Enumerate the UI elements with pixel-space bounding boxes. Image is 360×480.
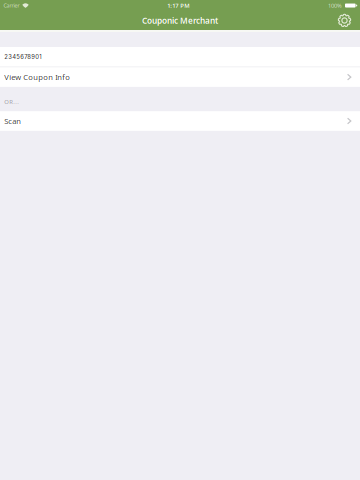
staticText: 1:17 PM <box>167 1 189 9</box>
staticText: Carrier <box>3 2 19 9</box>
staticText: Scan <box>4 116 21 126</box>
button[interactable]: View Coupon Info <box>0 67 360 87</box>
staticText: 2345678901 <box>4 53 41 60</box>
button[interactable]: Settings <box>333 11 356 30</box>
staticText: View Coupon Info <box>4 72 70 82</box>
button[interactable]: Scan <box>0 111 360 131</box>
staticText: OR... <box>4 98 19 106</box>
staticText: 100% <box>328 2 342 9</box>
staticText: Couponic Merchant <box>142 15 218 26</box>
